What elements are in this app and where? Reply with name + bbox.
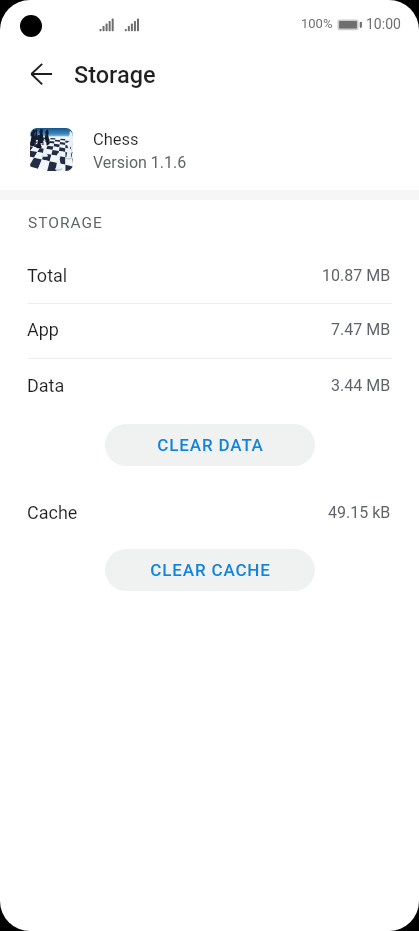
staticText: 10.87 MB xyxy=(322,266,391,285)
staticText: 10:00 xyxy=(366,16,401,32)
button[interactable]: CLEAR DATA xyxy=(105,424,315,466)
button[interactable]: Back xyxy=(19,52,63,96)
staticText: Version 1.1.6 xyxy=(93,153,187,172)
staticText: Total xyxy=(27,265,68,286)
staticText: Data xyxy=(27,375,65,396)
staticText: Storage xyxy=(74,61,156,89)
button[interactable]: Chess xyxy=(0,106,419,190)
staticText: 7.47 MB xyxy=(331,320,391,339)
button[interactable]: CLEAR CACHE xyxy=(105,549,315,591)
staticText: App xyxy=(27,319,59,340)
staticText: Cache xyxy=(27,502,78,523)
staticText: 49.15 kB xyxy=(328,503,391,522)
staticText: CLEAR CACHE xyxy=(150,560,271,580)
staticText: CLEAR DATA xyxy=(157,435,264,455)
staticText: 3.44 MB xyxy=(331,376,391,395)
staticText: STORAGE xyxy=(28,214,103,232)
staticText: Chess xyxy=(93,130,139,149)
staticText: 100% xyxy=(301,16,333,31)
